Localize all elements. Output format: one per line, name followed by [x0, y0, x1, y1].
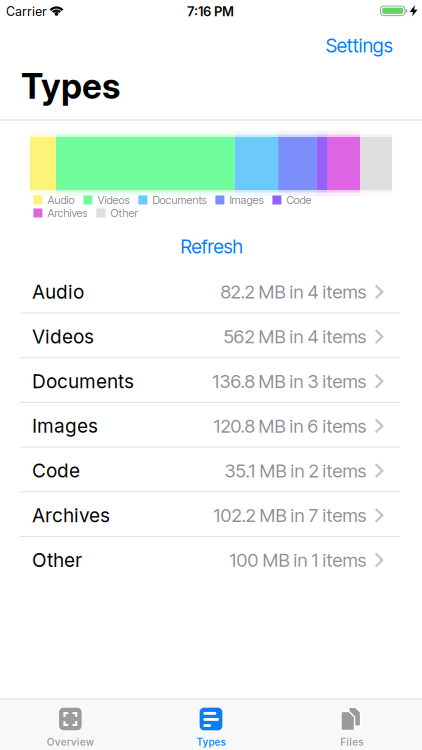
- button[interactable]: Other: [0, 538, 422, 582]
- staticText: Carrier: [6, 4, 47, 19]
- staticText: 562 MB in 4 items: [223, 325, 366, 348]
- staticText: Overview: [47, 736, 94, 748]
- staticText: Archives: [32, 504, 110, 527]
- button[interactable]: Videos: [0, 314, 422, 359]
- staticText: Videos: [97, 193, 129, 207]
- staticText: Types: [196, 736, 225, 748]
- staticText: Images: [229, 193, 263, 207]
- button[interactable]: Documents: [0, 359, 422, 404]
- staticText: Code: [286, 193, 311, 207]
- staticText: 136.8 MB in 3 items: [212, 370, 366, 392]
- staticText: Other: [110, 206, 138, 220]
- button[interactable]: Archives: [0, 493, 422, 538]
- button[interactable]: Types: [141, 700, 281, 750]
- button[interactable]: Code: [0, 448, 422, 493]
- staticText: Documents: [152, 193, 206, 207]
- staticText: Audio: [47, 193, 74, 207]
- staticText: Videos: [32, 325, 94, 348]
- button[interactable]: Audio: [0, 269, 422, 314]
- staticText: Code: [32, 459, 80, 482]
- staticText: Other: [32, 549, 82, 572]
- button[interactable]: Refresh: [180, 235, 242, 258]
- staticText: 82.2 MB in 4 items: [220, 281, 366, 303]
- staticText: Documents: [32, 370, 134, 393]
- button[interactable]: Images: [0, 404, 422, 448]
- staticText: Files: [340, 736, 363, 748]
- staticText: Archives: [47, 206, 87, 220]
- button[interactable]: Settings: [326, 34, 393, 57]
- staticText: 102.2 MB in 7 items: [213, 504, 366, 527]
- staticText: 120.8 MB in 6 items: [213, 415, 366, 437]
- staticText: 100 MB in 1 items: [229, 549, 366, 571]
- staticText: Settings: [326, 34, 393, 57]
- staticText: Images: [32, 414, 98, 437]
- button[interactable]: Files: [281, 700, 422, 750]
- staticText: 35.1 MB in 2 items: [224, 459, 366, 482]
- staticText: Types: [21, 65, 120, 107]
- staticText: Audio: [32, 280, 84, 303]
- staticText: 7:16 PM: [187, 4, 234, 19]
- button[interactable]: Overview: [0, 700, 141, 750]
- staticText: Refresh: [180, 235, 242, 258]
